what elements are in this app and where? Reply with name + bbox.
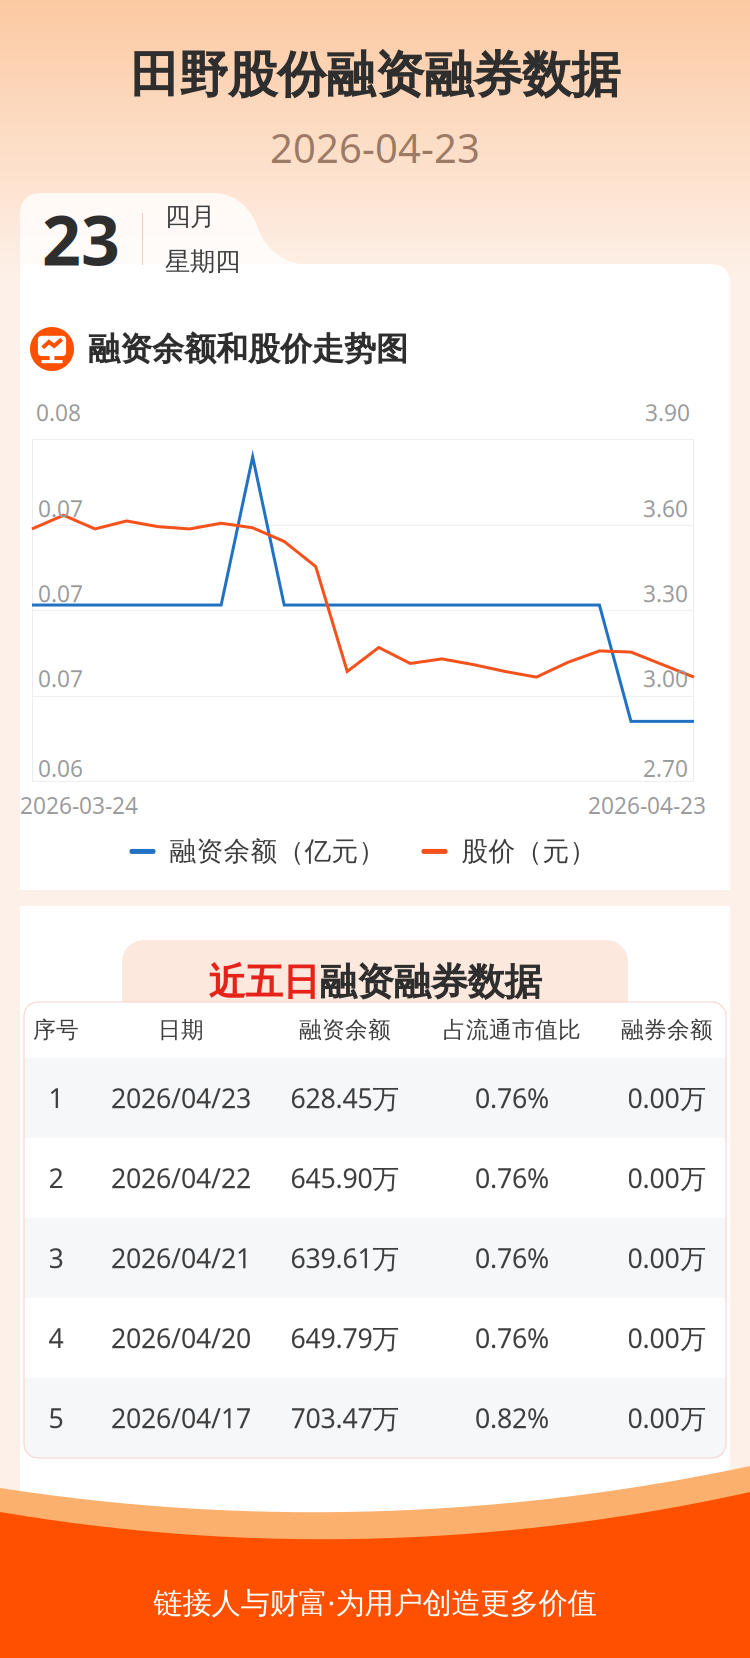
staticText: 2026/04/22 — [111, 1160, 251, 1196]
staticText: 2026/04/20 — [111, 1320, 251, 1356]
staticText: 融资融券数据 — [319, 958, 541, 1005]
staticText: 645.90万 — [290, 1160, 399, 1196]
staticText: 4 — [48, 1320, 63, 1356]
staticText: 占流通市值比 — [443, 1016, 581, 1044]
staticText: 3 — [48, 1240, 63, 1276]
staticText: 0.76% — [475, 1080, 549, 1116]
staticText: 3.60 — [643, 493, 688, 524]
staticText: 0.00万 — [627, 1320, 706, 1356]
staticText: 0.00万 — [627, 1240, 706, 1276]
staticText: 649.79万 — [290, 1320, 399, 1356]
staticText: 日期 — [158, 1016, 204, 1044]
staticText: 2 — [48, 1160, 63, 1196]
staticText: 23 — [42, 193, 120, 285]
staticText: 0.00万 — [627, 1160, 706, 1196]
staticText: 0.82% — [475, 1400, 549, 1436]
staticText: 融资余额 — [299, 1016, 391, 1044]
staticText: 2026/04/17 — [111, 1400, 251, 1436]
staticText: 2026/04/21 — [111, 1240, 251, 1276]
staticText: 0.08 — [36, 397, 81, 428]
staticText: 3.90 — [645, 397, 690, 428]
staticText: 融资余额和股价走势图 — [88, 329, 408, 369]
staticText: 2026-03-24 — [20, 790, 138, 821]
staticText: 5 — [48, 1400, 63, 1436]
staticText: 3.00 — [643, 663, 688, 694]
staticText: 639.61万 — [290, 1240, 399, 1276]
staticText: 703.47万 — [290, 1400, 399, 1436]
staticText: 融券余额 — [621, 1016, 713, 1044]
staticText: 0.07 — [38, 493, 83, 524]
staticText: 股价（元） — [461, 835, 596, 868]
staticText: 田野股份融资融券数据 — [130, 44, 620, 106]
staticText: 0.07 — [38, 663, 83, 694]
staticText: 序号 — [33, 1016, 79, 1044]
staticText: 0.00万 — [627, 1400, 706, 1436]
staticText: 2.70 — [643, 753, 688, 784]
staticText: 近五日 — [208, 958, 319, 1005]
staticText: 2026-04-23 — [588, 790, 706, 821]
staticText: 2026/04/23 — [111, 1080, 251, 1116]
staticText: 628.45万 — [290, 1080, 399, 1116]
staticText: 0.76% — [475, 1240, 549, 1276]
staticText: 融资余额（亿元） — [169, 835, 385, 868]
staticText: 2026-04-23 — [270, 120, 480, 175]
staticText: 1 — [48, 1080, 63, 1116]
staticText: 0.06 — [38, 753, 83, 784]
staticText: 0.07 — [38, 578, 83, 609]
staticText: 3.30 — [643, 578, 688, 609]
staticText: 0.00万 — [627, 1080, 706, 1116]
staticText: 0.76% — [475, 1160, 549, 1196]
staticText: 链接人与财富·为用户创造更多价值 — [153, 1582, 596, 1622]
staticText: 四月 — [165, 201, 215, 232]
staticText: 0.76% — [475, 1320, 549, 1356]
staticText: 星期四 — [165, 245, 240, 277]
